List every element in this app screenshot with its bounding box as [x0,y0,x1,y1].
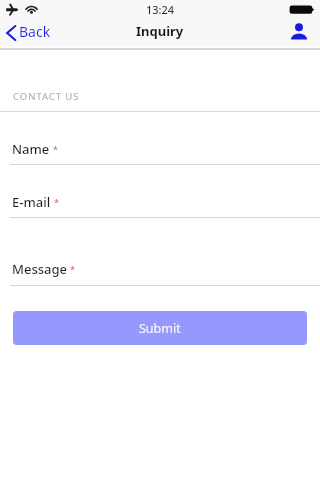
staticText: * [54,196,59,208]
button[interactable]: Account [283,18,314,45]
staticText: Message [12,260,67,278]
button[interactable]: E-mail [0,165,320,217]
button[interactable]: Name [0,112,320,164]
staticText: * [53,143,58,155]
staticText: Submit [139,320,181,337]
button[interactable]: Message [0,218,320,285]
staticText: 13:24 [146,2,175,17]
staticText: Inquiry [136,22,184,40]
staticText: * [70,263,75,275]
staticText: E-mail [12,193,51,211]
button[interactable]: Back [0,20,59,47]
staticText: Back [19,22,51,41]
staticText: Name [12,140,50,158]
staticText: CONTACT US [13,90,80,103]
button[interactable]: Submit [13,311,307,345]
